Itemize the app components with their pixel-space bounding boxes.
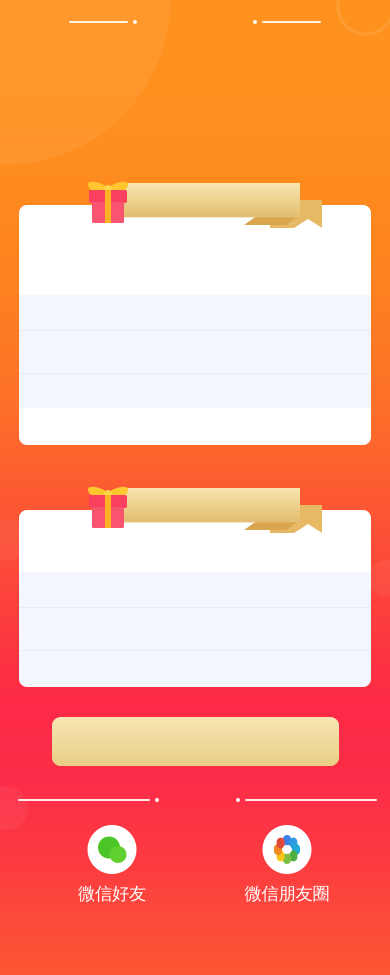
button[interactable] <box>52 717 339 766</box>
staticText: 微信朋友圈 <box>244 883 329 904</box>
staticText: 微信好友 <box>78 883 146 904</box>
button[interactable]: 微信好友 <box>62 825 162 904</box>
button[interactable]: 微信朋友圈 <box>237 825 337 904</box>
